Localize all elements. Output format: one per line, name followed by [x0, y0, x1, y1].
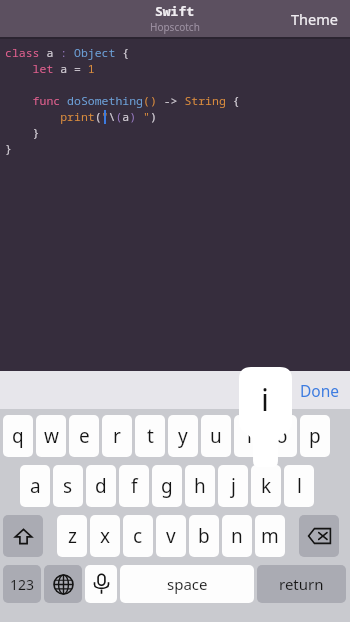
button[interactable]: Dictation [85, 565, 117, 603]
staticText: q [12, 423, 24, 449]
staticText: } [5, 125, 40, 141]
staticText: l [297, 473, 302, 499]
button[interactable]: v [156, 515, 186, 557]
staticText: i [261, 378, 269, 420]
button[interactable]: g [152, 465, 182, 507]
staticText: y [178, 423, 188, 449]
staticText: b [198, 523, 210, 549]
button[interactable]: Shift [3, 515, 43, 557]
button[interactable]: w [36, 415, 66, 457]
staticText: func doSomething() -> String { [5, 93, 240, 109]
staticText: Done [300, 380, 340, 401]
staticText: space [167, 574, 208, 594]
staticText: s [63, 473, 73, 499]
staticText: u [210, 423, 222, 449]
button[interactable]: b [189, 515, 219, 557]
staticText: x [100, 523, 111, 549]
staticText: } [5, 141, 12, 157]
button[interactable]: o [267, 415, 297, 457]
button[interactable]: h [185, 465, 215, 507]
staticText: class a : Object { [5, 45, 130, 61]
staticText: v [166, 523, 176, 549]
button[interactable]: q [3, 415, 33, 457]
button[interactable]: l [284, 465, 314, 507]
staticText: d [95, 473, 107, 499]
button[interactable]: y [168, 415, 198, 457]
staticText: z [68, 523, 77, 549]
button[interactable]: 123 [3, 565, 41, 603]
button[interactable]: return [257, 565, 346, 603]
staticText: f [131, 473, 138, 499]
staticText: e [79, 423, 90, 449]
staticText: Hopscotch [150, 20, 200, 34]
staticText: c [133, 523, 143, 549]
staticText: n [231, 523, 243, 549]
button[interactable]: c [123, 515, 153, 557]
staticText: w [44, 423, 59, 449]
button[interactable]: u [201, 415, 231, 457]
staticText: Swift [155, 2, 195, 20]
button[interactable]: i [234, 415, 264, 457]
button[interactable]: Theme [287, 5, 342, 33]
staticText: k [261, 473, 272, 499]
button[interactable]: p [300, 415, 330, 457]
button[interactable]: e [69, 415, 99, 457]
button[interactable]: Backspace [299, 515, 339, 557]
staticText: 123 [10, 575, 35, 594]
staticText: let a = 1 [5, 61, 95, 77]
button[interactable]: Next keyboard [44, 565, 82, 603]
button[interactable]: t [135, 415, 165, 457]
staticText: return [279, 574, 324, 594]
button[interactable]: r [102, 415, 132, 457]
staticText: Theme [291, 9, 338, 29]
button[interactable]: d [86, 465, 116, 507]
staticText: g [161, 473, 173, 499]
staticText: h [194, 473, 206, 499]
staticText: m [261, 523, 279, 549]
button[interactable]: k [251, 465, 281, 507]
staticText: j [231, 473, 236, 499]
staticText: p [309, 423, 321, 449]
button[interactable]: n [222, 515, 252, 557]
button[interactable]: f [119, 465, 149, 507]
button[interactable]: m [255, 515, 285, 557]
staticText: o [276, 423, 288, 449]
staticText: r [113, 423, 121, 449]
button[interactable]: j [218, 465, 248, 507]
staticText: t [147, 423, 154, 449]
staticText: i [247, 423, 252, 449]
staticText: print("\(a) ") [5, 109, 157, 125]
button[interactable]: a [20, 465, 50, 507]
button[interactable]: s [53, 465, 83, 507]
staticText: a [30, 473, 41, 499]
button[interactable]: z [57, 515, 87, 557]
button[interactable]: Done [294, 375, 346, 406]
button[interactable]: space [120, 565, 254, 603]
button[interactable]: x [90, 515, 120, 557]
